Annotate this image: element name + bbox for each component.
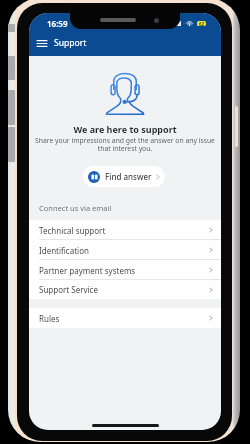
staticText: We are here to support xyxy=(29,123,221,135)
staticText: Share your impressions and get the answe… xyxy=(32,136,218,153)
staticText: Rules xyxy=(39,313,60,324)
staticText: Find answer xyxy=(105,171,152,182)
staticText: 16:59 xyxy=(47,18,68,29)
button[interactable]: Find answer xyxy=(83,166,165,187)
staticText: Technical support xyxy=(39,225,106,236)
button[interactable]: Rules xyxy=(29,308,221,328)
button[interactable]: Identification xyxy=(29,240,221,260)
staticText: Support xyxy=(54,37,87,49)
button[interactable]: Technical support xyxy=(29,220,221,240)
staticText: Identification xyxy=(39,245,89,256)
staticText: Connect us via email xyxy=(39,203,112,213)
button[interactable]: Partner payment systems xyxy=(29,260,221,280)
button[interactable]: Support Service xyxy=(29,280,221,299)
staticText: Partner payment systems xyxy=(39,265,136,276)
button[interactable]: Open navigation menu xyxy=(32,33,52,53)
staticText: 62 xyxy=(199,21,205,26)
staticText: Support Service xyxy=(39,284,98,295)
